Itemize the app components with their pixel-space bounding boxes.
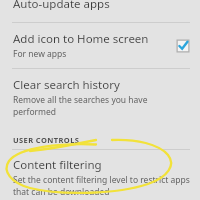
- staticText: For new apps: [13, 48, 67, 60]
- staticText: USER CONTROLS: [13, 135, 80, 145]
- staticText: Clear search history: [13, 77, 120, 93]
- button[interactable]: Auto-update apps: [0, 0, 200, 14]
- button[interactable]: Clear search history: [0, 71, 200, 124]
- staticText: Remove all the searches you have perform…: [13, 94, 190, 118]
- staticText: Auto-update apps: [13, 0, 110, 10]
- button[interactable]: Add icon to Home screen checkbox: [176, 39, 190, 53]
- staticText: Content filtering: [13, 157, 102, 173]
- staticText: Add icon to Home screen: [13, 31, 149, 47]
- staticText: Set the content filtering level to restr…: [13, 174, 190, 195]
- button[interactable]: Add icon to Home screen: [0, 25, 200, 66]
- button[interactable]: Content filtering: [0, 152, 200, 200]
